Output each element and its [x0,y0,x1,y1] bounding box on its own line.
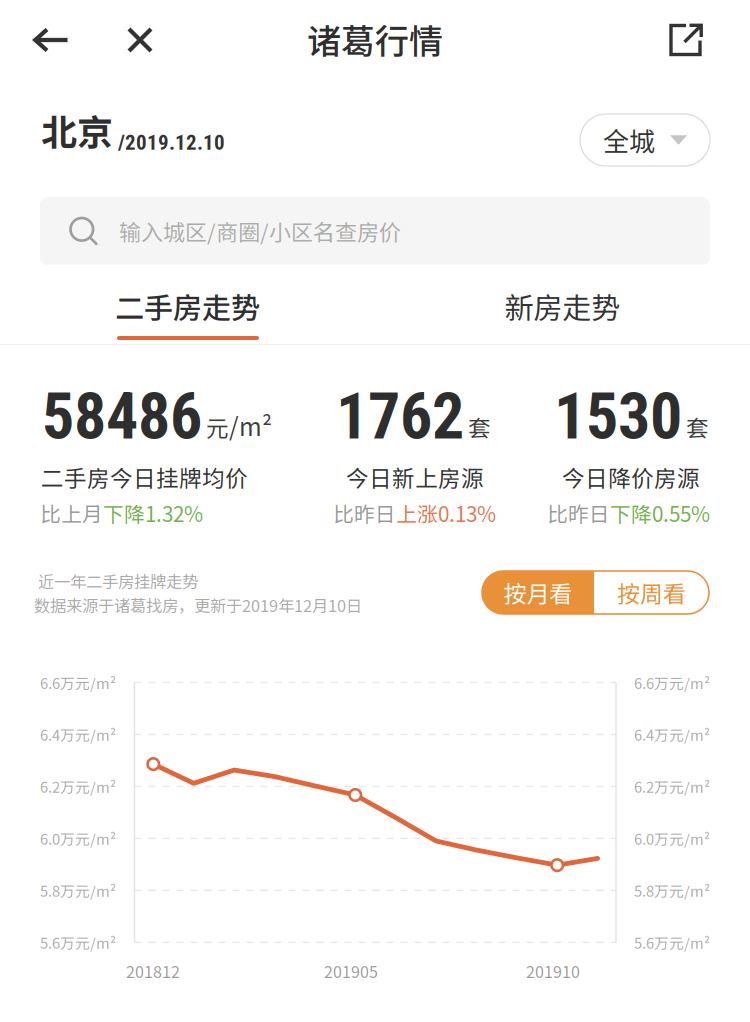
button[interactable]: 输入城区/商圈/小区名查房价 [40,197,710,265]
staticText: 数据来源于诸葛找房，更新于2019年12月10日 [34,593,362,617]
button[interactable]: 返回 [15,10,87,70]
staticText: 比昨日 [547,498,610,528]
staticText: 今日降价房源 [562,461,700,493]
staticText: /m² [229,407,272,443]
button[interactable]: 关闭 [106,10,174,70]
staticText: 6.2万元/m² [634,776,710,797]
staticText: 下降0.55% [610,498,710,528]
staticText: 1762 [336,379,464,454]
staticText: 全城 [603,121,655,159]
staticText: 6.2万元/m² [40,776,116,797]
staticText: /2019.12.10 [118,130,225,155]
staticText: 比昨日 [333,498,396,528]
staticText: 今日新上房源 [346,461,484,493]
staticText: 上涨0.13% [396,498,496,528]
button[interactable]: 按月看 [482,571,594,614]
staticText: 5.8万元/m² [40,880,116,901]
button[interactable]: 分享 [650,8,722,72]
staticText: 201905 [324,959,378,983]
staticText: 输入城区/商圈/小区名查房价 [119,215,401,247]
staticText: 5.6万元/m² [634,932,710,953]
staticText: 套 [468,410,491,443]
staticText: 5.6万元/m² [40,932,116,953]
staticText: 1530 [554,379,682,454]
button[interactable]: 全城 [580,114,710,166]
staticText: 58486 [42,379,202,454]
staticText: 按周看 [617,576,686,609]
button[interactable]: 二手房走势 [0,283,375,329]
staticText: 5.8万元/m² [634,880,710,901]
staticText: 201910 [526,959,580,983]
staticText: 6.4万元/m² [634,724,710,745]
staticText: 套 [686,410,709,443]
staticText: 6.0万元/m² [634,828,710,849]
staticText: 北京 [41,104,113,156]
staticText: 6.0万元/m² [40,828,116,849]
staticText: 6.6万元/m² [40,672,116,693]
staticText: 新房走势 [504,285,620,327]
staticText: 诸葛行情 [307,14,443,64]
button[interactable]: 按周看 [594,571,709,614]
staticText: 二手房走势 [115,285,260,327]
staticText: 二手房今日挂牌均价 [41,461,248,493]
staticText: 近一年二手房挂牌走势 [38,569,198,593]
staticText: 按月看 [503,576,572,609]
staticText: 比上月 [40,498,103,528]
staticText: 6.6万元/m² [634,672,710,693]
staticText: 元 [206,410,229,443]
staticText: 下降1.32% [103,498,203,528]
staticText: 6.4万元/m² [40,724,116,745]
button[interactable]: 新房走势 [375,283,750,329]
staticText: 201812 [126,959,180,983]
